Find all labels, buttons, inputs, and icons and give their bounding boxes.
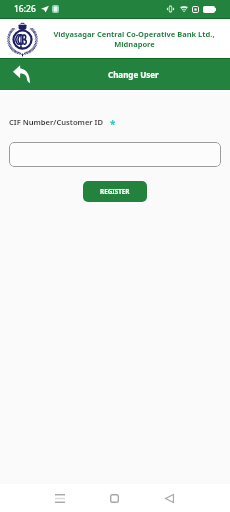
staticText: *: [110, 117, 116, 131]
button[interactable]: Recent apps: [33, 484, 87, 512]
button[interactable]: Back: [0, 59, 44, 90]
staticText: 16:26: [14, 3, 36, 15]
button[interactable]: Back: [142, 484, 197, 512]
button[interactable]: REGISTER: [83, 181, 147, 202]
staticText: Change User: [108, 69, 159, 80]
staticText: CIF Number/Customer ID: [9, 117, 103, 127]
button[interactable]: CIF Number input: [9, 142, 221, 167]
button[interactable]: Home: [87, 484, 142, 512]
staticText: Vidyasagar Central Co-Operative Bank Ltd…: [53, 29, 215, 39]
staticText: REGISTER: [100, 187, 130, 196]
staticText: Midnapore: [114, 39, 155, 49]
